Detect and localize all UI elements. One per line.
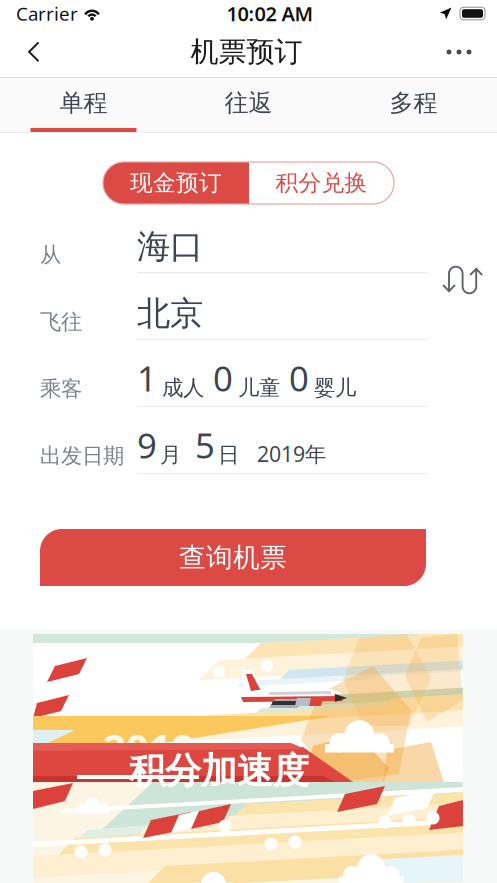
- staticText: 10:02 AM: [226, 0, 313, 27]
- staticText: 5: [195, 422, 215, 468]
- button[interactable]: 2019 积分加速度 promotion: [33, 634, 463, 883]
- staticText: 出发日期: [40, 443, 124, 469]
- staticText: 海口: [137, 226, 203, 267]
- staticText: 单程: [59, 88, 107, 118]
- staticText: 2019年: [257, 440, 326, 468]
- staticText: 成人: [162, 375, 204, 401]
- button[interactable]: Back: [10, 27, 58, 77]
- staticText: 日: [218, 442, 239, 468]
- staticText: 机票预订: [190, 35, 302, 69]
- button[interactable]: 多程: [331, 78, 496, 132]
- staticText: 1: [137, 355, 157, 401]
- staticText: 9: [137, 422, 157, 468]
- staticText: 积分兑换: [275, 169, 367, 197]
- staticText: 现金预订: [130, 169, 222, 197]
- staticText: 往返: [224, 88, 272, 118]
- staticText: 月: [160, 442, 181, 468]
- button[interactable]: 积分兑换: [249, 162, 394, 204]
- button[interactable]: Swap origin and destination: [441, 265, 484, 295]
- staticText: 北京: [137, 293, 203, 334]
- staticText: Carrier: [16, 1, 78, 26]
- staticText: 婴儿: [314, 375, 356, 401]
- staticText: 多程: [389, 88, 437, 118]
- staticText: 0: [213, 355, 233, 401]
- staticText: 飞往: [40, 309, 82, 335]
- staticText: 儿童: [238, 375, 280, 401]
- staticText: 查询机票: [179, 541, 287, 574]
- staticText: 从: [40, 242, 61, 268]
- button[interactable]: 查询机票: [40, 529, 426, 586]
- staticText: 乘客: [40, 376, 82, 402]
- staticText: 2019: [103, 721, 195, 774]
- staticText: 0: [289, 355, 309, 401]
- button[interactable]: 单程: [1, 78, 166, 132]
- button[interactable]: More options: [435, 27, 483, 77]
- staticText: 积分加速度: [129, 749, 309, 793]
- button[interactable]: 往返: [166, 78, 331, 132]
- button[interactable]: 现金预订: [103, 162, 249, 204]
